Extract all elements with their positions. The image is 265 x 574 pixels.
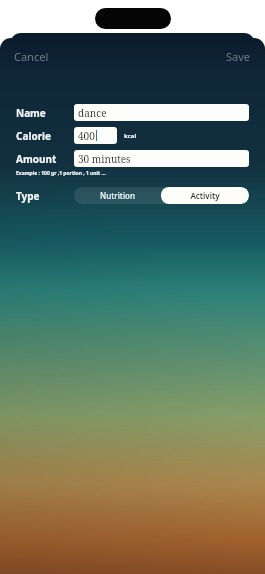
staticText: Example : 100 gr ,1 portion , 1 unit ... (16, 170, 106, 177)
button[interactable]: 30 minutes (74, 150, 249, 167)
staticText: Amount (16, 152, 57, 166)
button[interactable]: Nutrition (74, 187, 161, 204)
staticText: Nutrition (100, 190, 135, 201)
staticText: kcal (124, 132, 137, 140)
button[interactable]: Cancel (0, 43, 57, 70)
button[interactable]: Save (218, 43, 265, 70)
staticText: Save (226, 49, 251, 64)
staticText: Name (16, 106, 46, 120)
button[interactable]: 400 (74, 127, 117, 144)
staticText: Activity (190, 190, 220, 201)
staticText: Type (16, 189, 40, 203)
staticText: 400 (78, 129, 95, 143)
button[interactable]: dance (74, 104, 249, 121)
staticText: dance (78, 106, 107, 120)
staticText: Cancel (14, 49, 49, 64)
staticText: 30 minutes (78, 152, 131, 166)
button[interactable]: Activity (161, 187, 249, 204)
staticText: Calorie (16, 129, 52, 143)
